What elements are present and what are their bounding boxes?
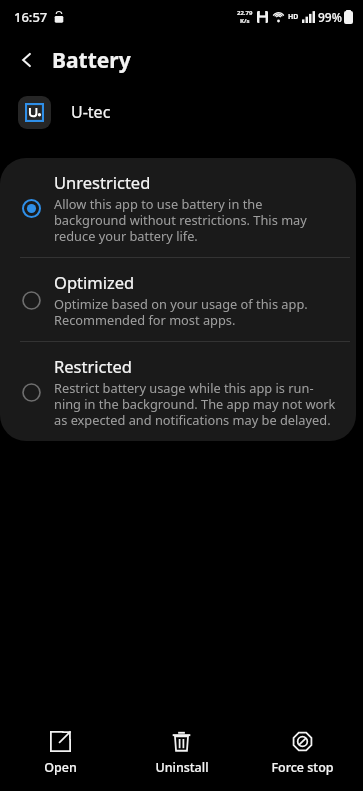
staticText: 22.79 [237,9,253,17]
button[interactable]: Restricted [0,342,356,441]
staticText: Uninstall [155,759,209,776]
button[interactable]: Force stop [242,725,363,782]
staticText: 99% [318,9,342,25]
staticText: Optimized [54,271,135,293]
staticText: U-tec [71,101,111,123]
button[interactable]: Unrestricted [0,158,356,257]
staticText: 16:57 [14,8,48,26]
button[interactable]: U-tec [0,86,363,138]
staticText: Open [44,759,77,776]
staticText: Restrict battery usage while this app is… [54,379,336,428]
staticText: K/s [240,17,250,25]
staticText: Restricted [54,355,132,377]
button[interactable]: Optimized [0,258,356,341]
staticText: Force stop [271,759,334,776]
staticText: HD [288,12,299,22]
button[interactable]: Back [8,41,46,79]
staticText: Optimize based on your usage of this app… [54,295,308,328]
staticText: Battery [52,46,131,75]
staticText: Allow this app to use battery in the bac… [54,195,307,244]
staticText: Unrestricted [54,171,151,193]
button[interactable]: Open [0,725,121,782]
button[interactable]: Uninstall [121,725,242,782]
